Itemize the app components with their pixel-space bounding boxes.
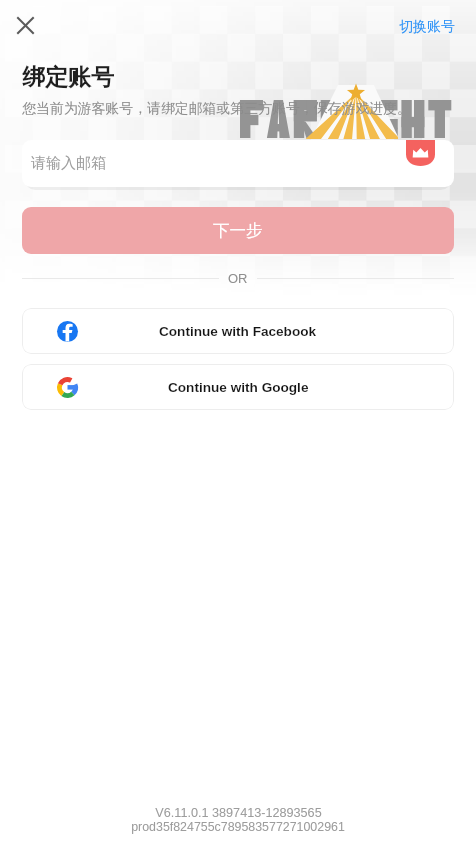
staticText: 绑定账号 bbox=[22, 63, 114, 92]
button[interactable]: Close bbox=[4, 4, 46, 46]
staticText: Continue with Facebook bbox=[159, 324, 317, 339]
staticText: 下一步 bbox=[213, 220, 263, 241]
staticText: 请输入邮箱 bbox=[31, 154, 106, 173]
button[interactable]: Continue with Facebook bbox=[22, 308, 454, 354]
staticText: 切换账号 bbox=[399, 18, 455, 36]
button[interactable]: 切换账号 bbox=[399, 18, 455, 36]
button[interactable]: Continue with Google bbox=[22, 364, 454, 410]
staticText: OR bbox=[228, 271, 248, 286]
button[interactable]: 请输入邮箱 bbox=[22, 140, 454, 187]
staticText: prod35f824755c789583577271002961 bbox=[131, 820, 345, 834]
staticText: Continue with Google bbox=[168, 380, 309, 395]
button[interactable]: 下一步 bbox=[22, 207, 454, 254]
staticText: 您当前为游客账号，请绑定邮箱或第三方账号，保存游戏进度。 bbox=[22, 100, 472, 118]
staticText: V6.11.0.1 3897413-12893565 bbox=[155, 806, 322, 820]
